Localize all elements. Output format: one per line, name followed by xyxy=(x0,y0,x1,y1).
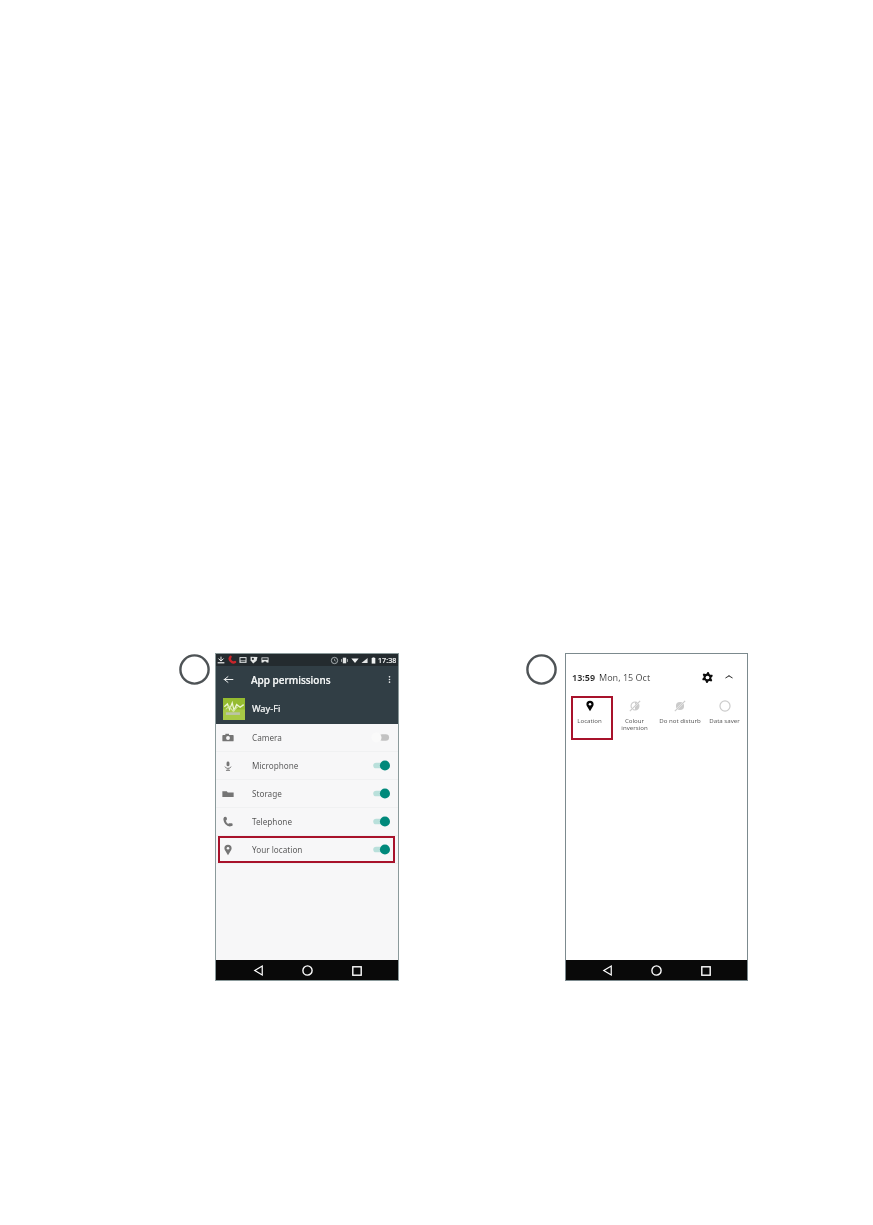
staticText: Way-Fi xyxy=(252,702,281,715)
button[interactable]: Location xyxy=(567,695,612,739)
button[interactable]: Home xyxy=(637,960,676,981)
staticText: Colour inversion xyxy=(621,716,648,732)
button[interactable]: Home xyxy=(288,960,327,981)
staticText: Your location xyxy=(252,844,303,855)
staticText: Camera xyxy=(252,732,282,743)
staticText: App permissions xyxy=(251,673,331,687)
button[interactable]: Your location xyxy=(215,836,399,863)
staticText: 13:59 xyxy=(572,671,596,683)
button[interactable]: Settings xyxy=(698,668,716,686)
button[interactable]: Back xyxy=(239,960,278,981)
button[interactable]: More options xyxy=(379,666,399,693)
staticText: Do not disturb xyxy=(659,716,701,724)
staticText: Telephone xyxy=(252,816,293,827)
staticText: Mon, 15 Oct xyxy=(599,671,651,683)
button[interactable]: Back xyxy=(215,666,241,693)
button[interactable]: Colour inversion xyxy=(612,695,657,739)
staticText: 17:38 xyxy=(378,655,397,665)
staticText: Microphone xyxy=(252,760,299,771)
button[interactable]: Camera xyxy=(215,724,399,751)
staticText: Data saver xyxy=(709,716,740,724)
button[interactable]: Storage xyxy=(215,780,399,807)
button[interactable]: Way-Fi xyxy=(215,693,399,724)
staticText: Storage xyxy=(252,788,282,799)
button[interactable]: Do not disturb xyxy=(657,695,702,739)
button[interactable]: Recents xyxy=(686,960,725,981)
staticText: Location xyxy=(577,716,602,724)
button[interactable]: Telephone xyxy=(215,808,399,835)
button[interactable]: Collapse xyxy=(721,669,737,685)
button[interactable]: Back xyxy=(588,960,627,981)
button[interactable]: Recents xyxy=(337,960,376,981)
button[interactable]: Data saver xyxy=(702,695,747,739)
button[interactable]: Microphone xyxy=(215,752,399,779)
